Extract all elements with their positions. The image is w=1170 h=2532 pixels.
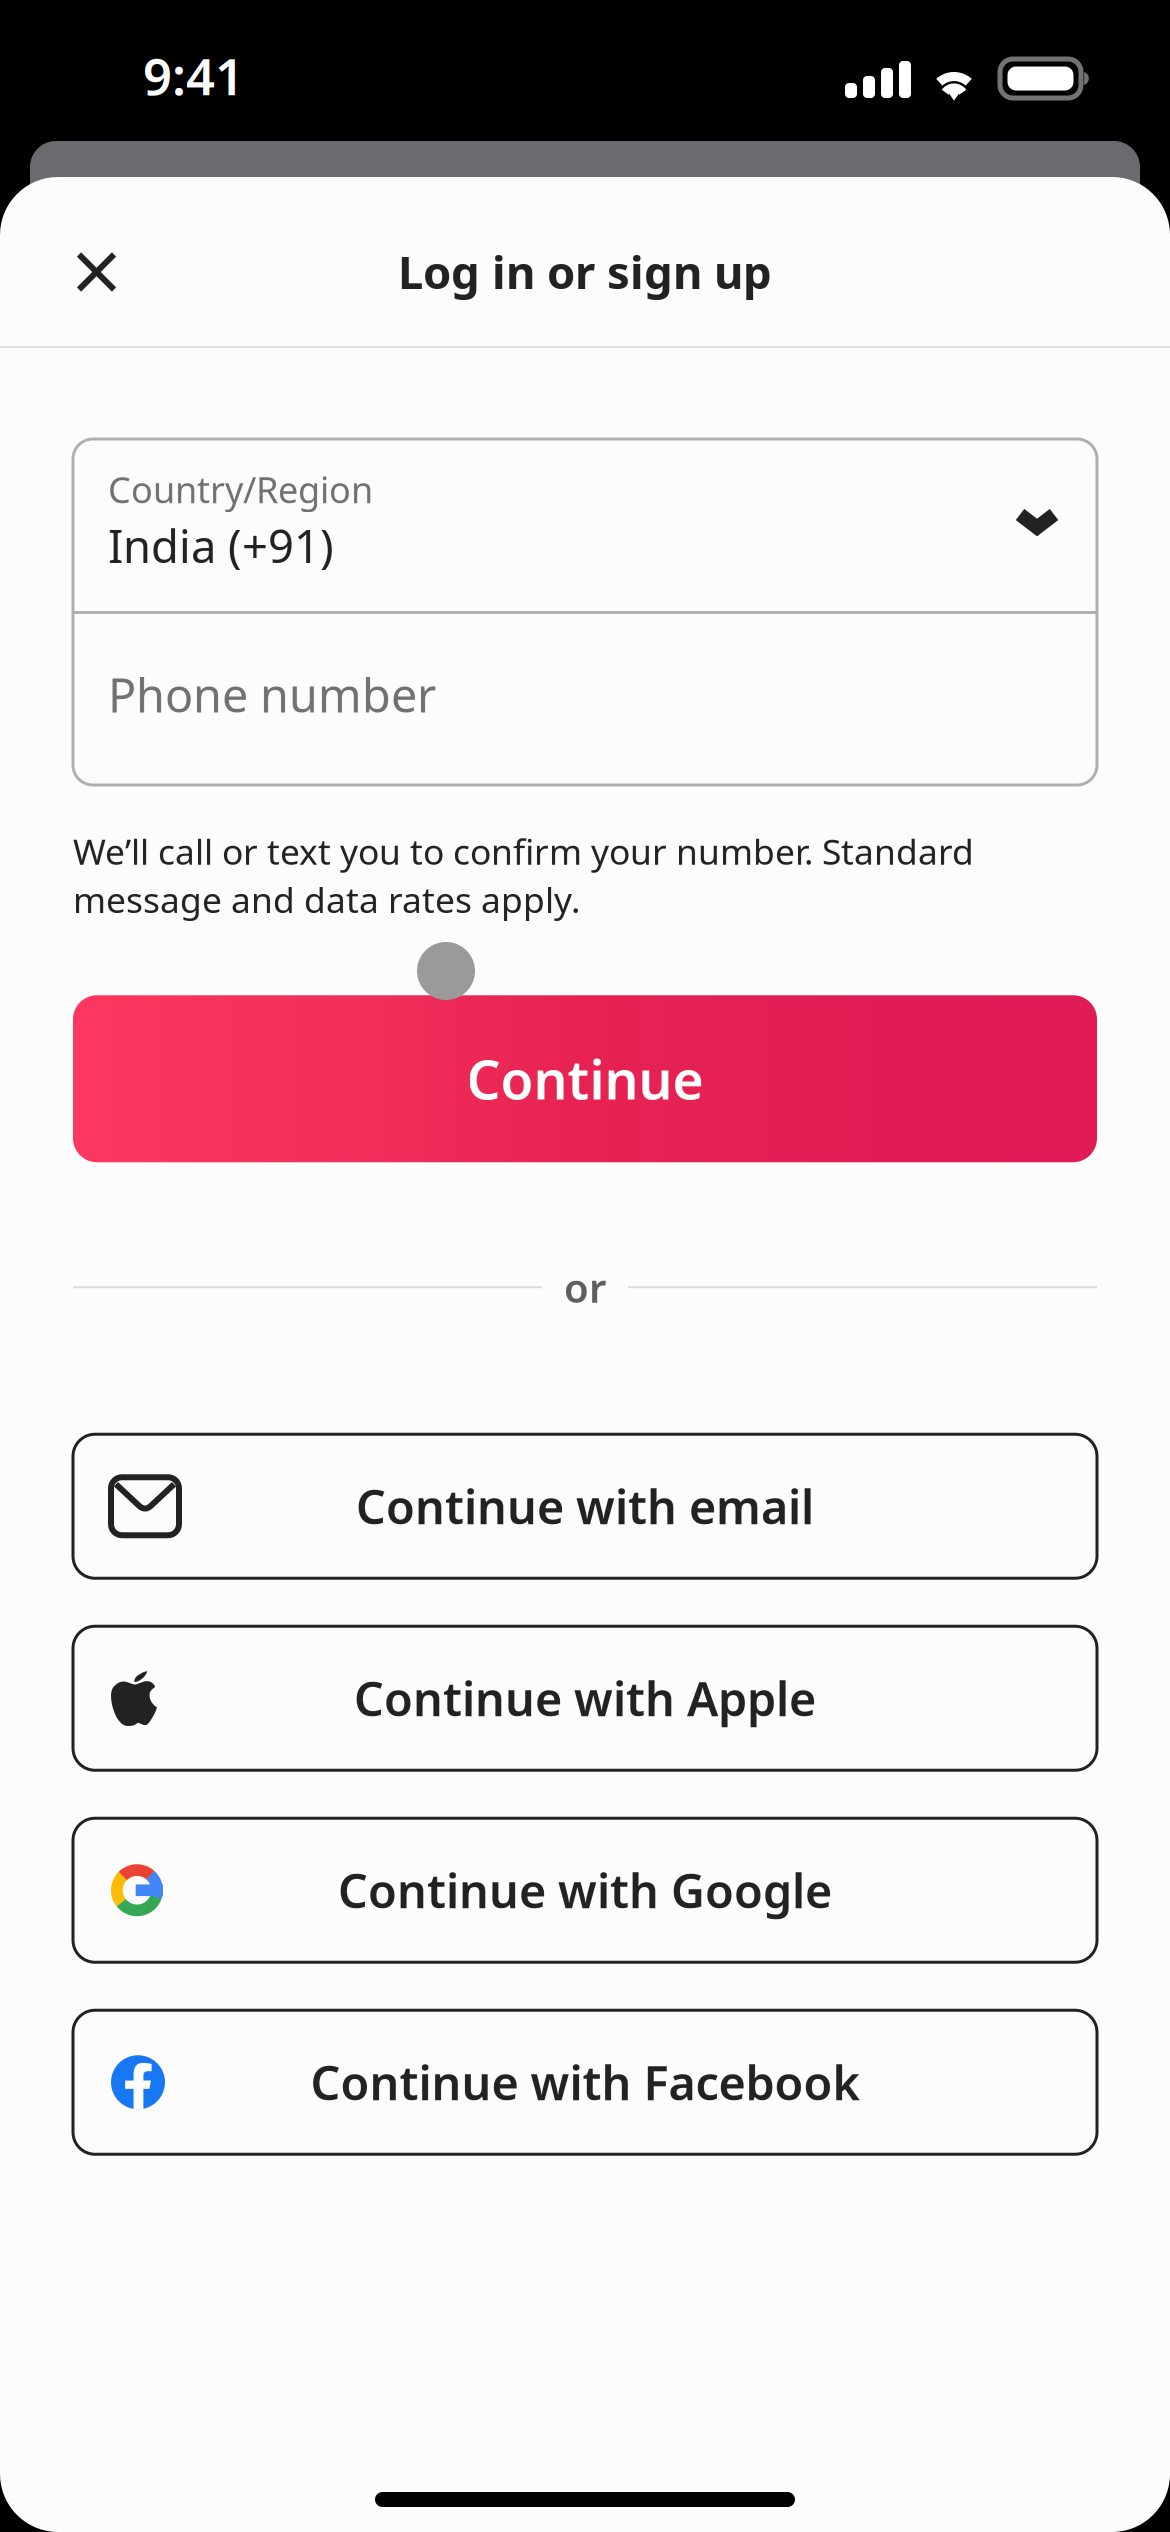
staticText: Country/Region <box>108 465 373 513</box>
button[interactable]: Close <box>49 224 144 319</box>
button[interactable]: Continue with Apple <box>73 1626 1097 1770</box>
staticText: 9:41 <box>143 42 244 109</box>
button[interactable]: Continue with Google <box>73 1818 1097 1962</box>
staticText: or <box>564 1261 606 1314</box>
staticText: We’ll call or text you to confirm your n… <box>73 827 974 923</box>
staticText: Continue with email <box>356 1475 814 1537</box>
button[interactable]: Continue with email <box>73 1434 1097 1578</box>
staticText: Log in or sign up <box>398 241 772 302</box>
staticText: Continue <box>466 1043 703 1114</box>
staticText: India (+91) <box>108 515 334 575</box>
staticText: Phone number <box>108 663 436 725</box>
button[interactable]: Phone number <box>73 614 1097 785</box>
button[interactable]: Country/Region <box>73 439 1097 611</box>
staticText: Continue with Facebook <box>310 2051 859 2113</box>
button[interactable]: Continue with Facebook <box>73 2010 1097 2154</box>
button[interactable]: Continue <box>73 995 1097 1162</box>
staticText: Continue with Apple <box>354 1667 816 1729</box>
staticText: Continue with Google <box>338 1859 832 1921</box>
